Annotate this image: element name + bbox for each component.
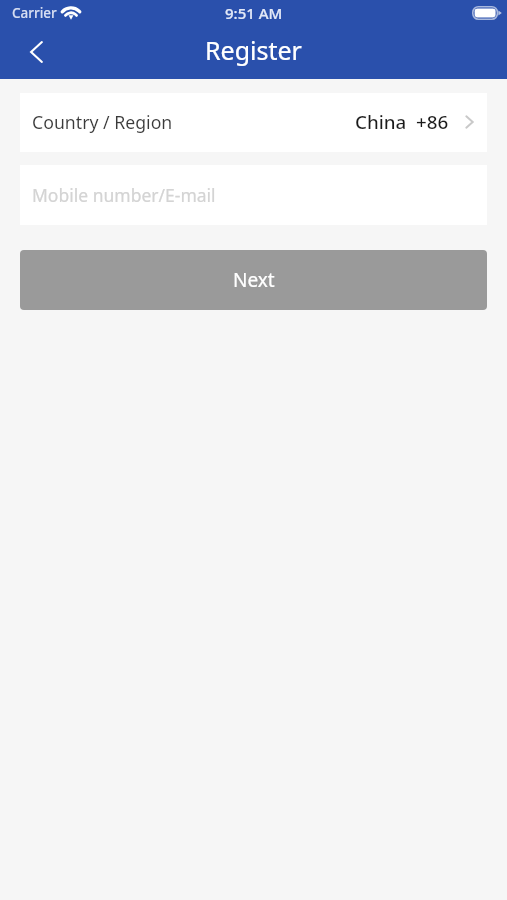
staticText: Mobile number/E-mail <box>32 183 216 207</box>
staticText: Next <box>233 267 275 293</box>
button[interactable]: Country / Region <box>20 93 487 152</box>
staticText: Country / Region <box>32 110 173 134</box>
button[interactable]: Back <box>14 30 59 75</box>
staticText: China <box>355 109 407 135</box>
staticText: +86 <box>416 109 449 135</box>
staticText: Carrier <box>12 4 57 22</box>
button[interactable]: Mobile number/E-mail <box>20 165 487 225</box>
staticText: 9:51 AM <box>225 3 283 23</box>
button[interactable]: Next <box>20 250 487 310</box>
staticText: Register <box>205 33 302 67</box>
